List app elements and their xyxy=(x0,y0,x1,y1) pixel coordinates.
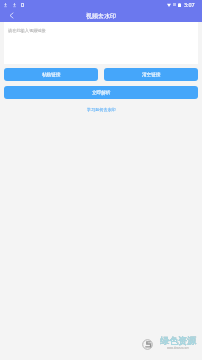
staticText: 粘贴链接 xyxy=(42,72,61,78)
button[interactable]: 粘贴链接 xyxy=(4,68,98,81)
staticText: 清空链接 xyxy=(142,72,161,78)
staticText: 视频去水印 xyxy=(86,12,116,20)
staticText: www.downzz.com xyxy=(167,346,189,350)
button[interactable]: 学习如何去水印 xyxy=(83,106,120,113)
staticText: 绿色资源 xyxy=(160,335,196,346)
button[interactable]: 清空链接 xyxy=(104,68,198,81)
staticText: 请在此输入视频链接 xyxy=(8,28,46,33)
staticText: 3:07 xyxy=(184,1,195,8)
button[interactable]: 请在此输入视频链接 xyxy=(4,22,198,64)
button[interactable]: 立即解析 xyxy=(4,86,198,99)
button[interactable]: Back xyxy=(7,11,16,20)
staticText: 立即解析 xyxy=(92,90,111,96)
staticText: 绿色资源 xyxy=(160,335,196,346)
